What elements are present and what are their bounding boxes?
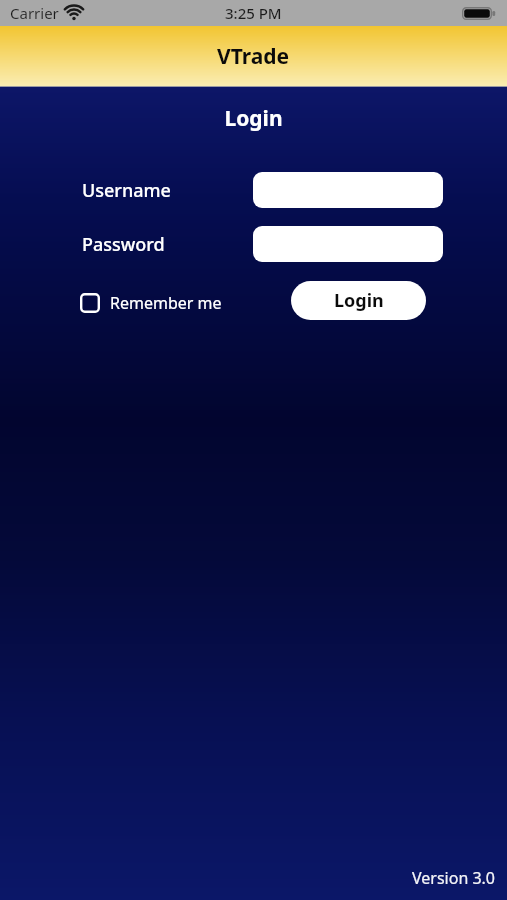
- staticText: Password: [82, 232, 165, 257]
- staticText: Carrier: [10, 3, 59, 23]
- staticText: VTrade: [217, 42, 290, 71]
- staticText: Username: [82, 178, 171, 203]
- staticText: 3:25 PM: [225, 3, 282, 23]
- button[interactable]: [253, 172, 443, 208]
- staticText: Remember me: [110, 292, 222, 314]
- button[interactable]: [253, 226, 443, 262]
- staticText: Version 3.0: [412, 867, 496, 889]
- staticText: Login: [334, 288, 384, 313]
- button[interactable]: Remember me: [80, 292, 222, 314]
- staticText: Login: [0, 104, 507, 133]
- button[interactable]: Login: [291, 281, 426, 320]
